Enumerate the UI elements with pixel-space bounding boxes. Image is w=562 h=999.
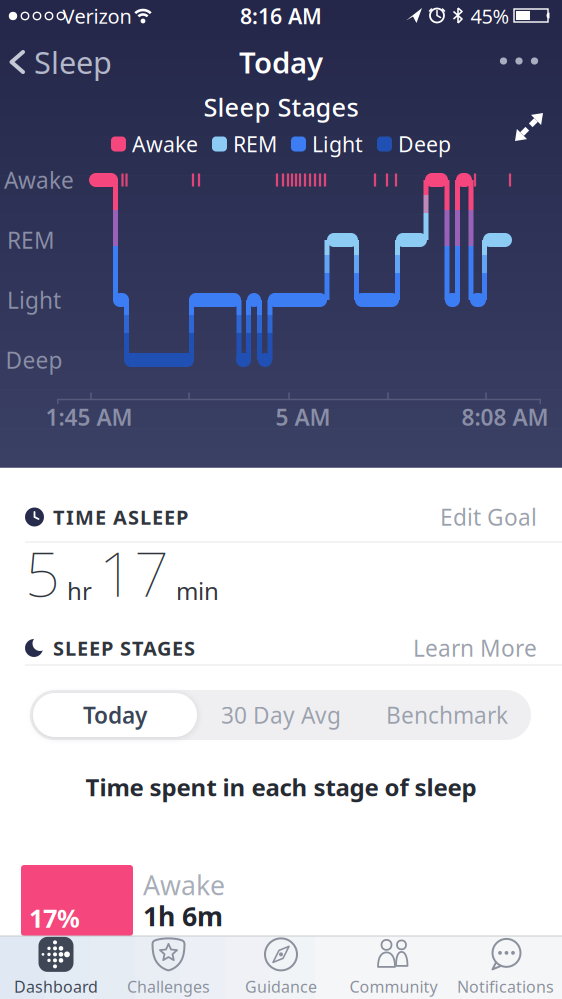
staticText: Benchmark (386, 700, 508, 730)
button[interactable]: Guidance (225, 936, 337, 998)
staticText: Guidance (245, 976, 317, 997)
button[interactable]: Challenges (112, 936, 224, 998)
staticText: Today (239, 42, 323, 81)
staticText: Dashboard (14, 976, 98, 997)
staticText: 30 Day Avg (221, 700, 341, 730)
button[interactable]: Benchmark (363, 690, 530, 740)
button[interactable]: Learn More (413, 633, 537, 663)
staticText: REM (7, 225, 55, 255)
staticText: Challenges (127, 976, 210, 997)
staticText: 45% (470, 3, 509, 29)
button[interactable]: Expand chart (514, 112, 543, 141)
staticText: SLEEP STAGES (53, 635, 195, 661)
button[interactable]: Dashboard (0, 936, 112, 998)
staticText: Light (312, 130, 363, 158)
staticText: 1:45 AM (45, 402, 132, 432)
staticText: hr (67, 575, 92, 607)
button[interactable]: 30 Day Avg (197, 690, 364, 740)
button[interactable]: Community (337, 936, 449, 998)
staticText: TIME ASLEEP (53, 504, 188, 530)
button[interactable]: Today (31, 690, 198, 740)
staticText: Awake (143, 867, 225, 903)
button[interactable]: More (496, 50, 541, 72)
button[interactable]: Sleep (9, 40, 129, 84)
staticText: Sleep (34, 42, 112, 82)
staticText: 17 (99, 532, 169, 614)
staticText: Deep (5, 345, 62, 375)
staticText: 8:08 AM (461, 402, 548, 432)
staticText: Deep (398, 130, 451, 158)
button[interactable]: Edit Goal (440, 502, 537, 532)
staticText: Sleep Stages (203, 90, 358, 124)
staticText: REM (233, 130, 277, 158)
staticText: Notifications (457, 976, 554, 997)
staticText: 1h 6m (143, 898, 223, 934)
staticText: Time spent in each stage of sleep (85, 771, 476, 803)
staticText: Verizon (62, 3, 131, 29)
staticText: 8:16 AM (240, 2, 322, 30)
staticText: Today (83, 700, 147, 730)
staticText: 5 AM (275, 402, 330, 432)
staticText: Community (349, 976, 437, 997)
staticText: min (176, 575, 219, 607)
staticText: 5 (25, 532, 60, 614)
staticText: Awake (132, 130, 198, 158)
staticText: Awake (4, 165, 74, 195)
staticText: Edit Goal (440, 502, 537, 532)
staticText: Light (7, 285, 61, 315)
button[interactable]: Notifications (449, 936, 561, 998)
staticText: 17% (29, 901, 80, 935)
staticText: Learn More (413, 633, 537, 663)
